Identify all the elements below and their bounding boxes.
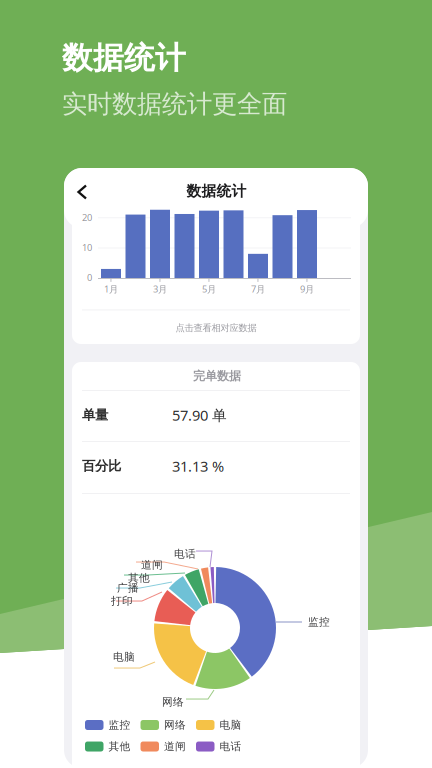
staticText: 点击查看相对应数据 xyxy=(175,322,256,334)
staticText: 电话 xyxy=(219,740,241,753)
staticText: 3月 xyxy=(153,283,167,295)
staticText: 电脑 xyxy=(219,718,241,731)
staticText: 20 xyxy=(82,211,92,224)
staticText: 57.90 单 xyxy=(172,405,227,425)
staticText: 监控 xyxy=(108,718,130,731)
staticText: 实时数据统计更全面 xyxy=(62,88,287,119)
staticText: 7月 xyxy=(251,283,265,295)
staticText: 9月 xyxy=(300,283,314,295)
staticText: 监控 xyxy=(308,615,330,628)
staticText: 31.13 % xyxy=(172,456,224,476)
staticText: 百分比 xyxy=(82,458,121,474)
staticText: 0 xyxy=(87,271,92,284)
staticText: 其他 xyxy=(128,571,150,584)
staticText: 网络 xyxy=(164,718,186,731)
staticText: 其他 xyxy=(108,740,130,753)
staticText: 道闸 xyxy=(141,558,163,571)
staticText: 完单数据 xyxy=(193,369,241,383)
staticText: 10 xyxy=(82,241,92,254)
staticText: 1月 xyxy=(104,283,118,295)
staticText: 单量 xyxy=(82,407,108,423)
staticText: 道闸 xyxy=(164,740,186,753)
button[interactable]: 点击查看相对应数据 xyxy=(72,311,360,345)
staticText: 电话 xyxy=(174,547,196,560)
button[interactable]: Back xyxy=(65,172,101,212)
staticText: 电脑 xyxy=(113,650,135,663)
staticText: 网络 xyxy=(162,695,184,708)
staticText: 5月 xyxy=(202,283,216,295)
staticText: 数据统计 xyxy=(62,39,186,77)
staticText: 广播 xyxy=(117,581,139,594)
staticText: 打印 xyxy=(111,594,133,607)
staticText: 数据统计 xyxy=(186,182,246,200)
